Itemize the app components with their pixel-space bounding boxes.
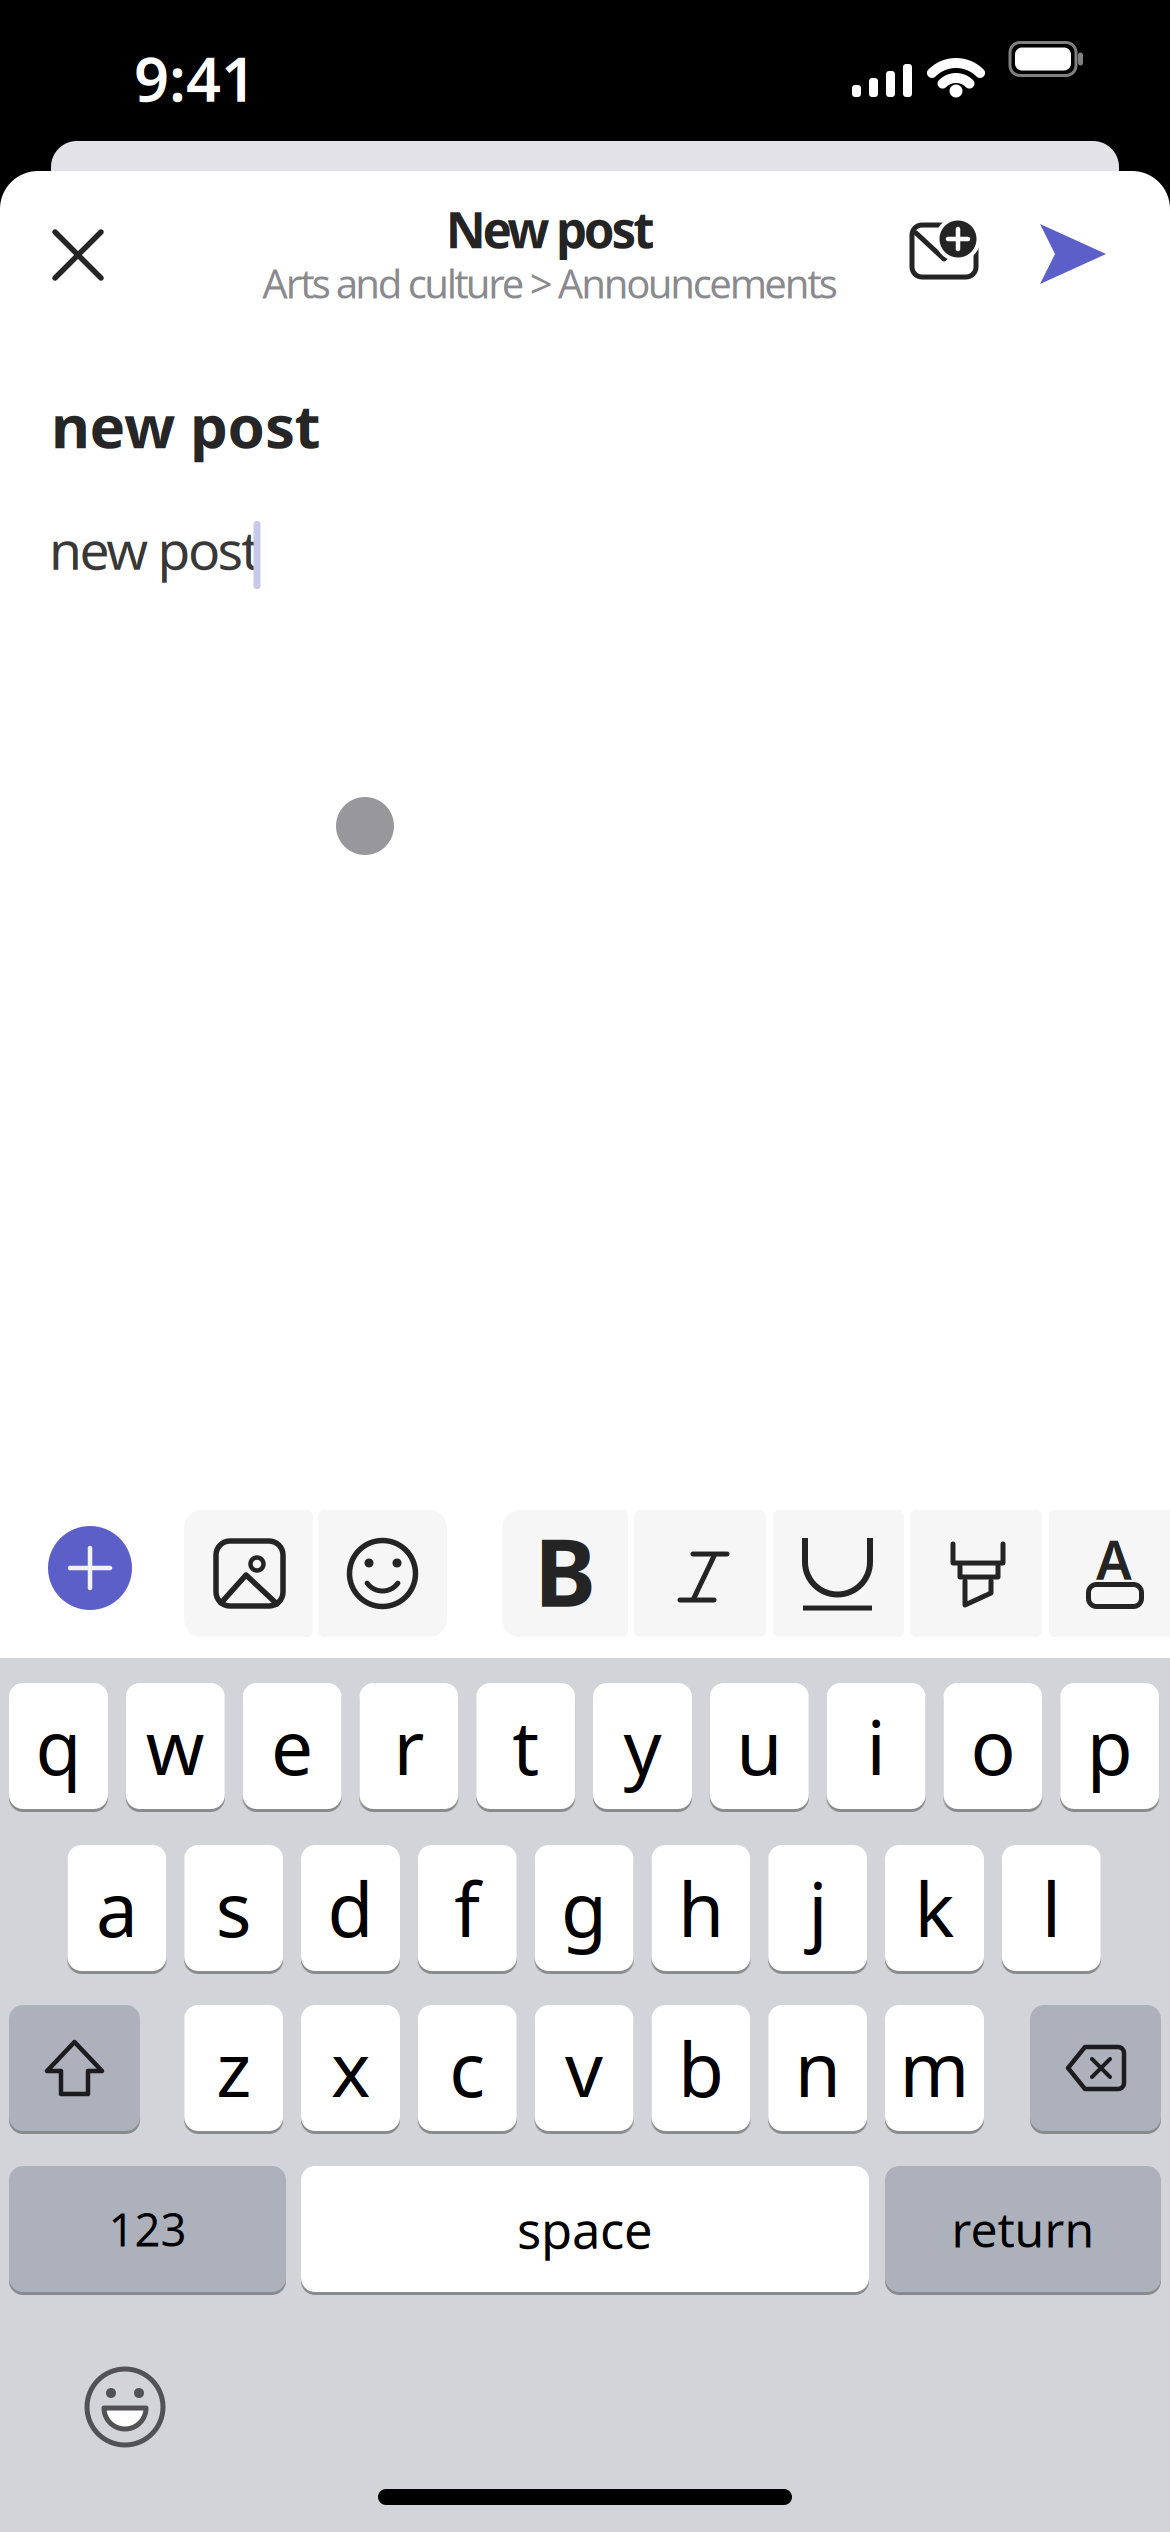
- staticText: new post: [49, 514, 260, 584]
- button[interactable]: Send: [1024, 205, 1120, 301]
- staticText: w: [146, 1696, 205, 1796]
- button[interactable]: i: [827, 1683, 926, 1809]
- button[interactable]: New message: [896, 203, 992, 299]
- button[interactable]: b: [651, 2005, 750, 2131]
- button[interactable]: a: [67, 1845, 166, 1971]
- staticText: q: [35, 1696, 81, 1796]
- button[interactable]: k: [885, 1845, 984, 1971]
- staticText: 9:41: [134, 37, 256, 119]
- button[interactable]: v: [535, 2005, 634, 2131]
- staticText: Arts and culture > Announcements: [262, 256, 838, 309]
- button[interactable]: j: [768, 1845, 867, 1971]
- button[interactable]: c: [418, 2005, 517, 2131]
- staticText: s: [216, 1858, 252, 1958]
- button[interactable]: t: [476, 1683, 575, 1809]
- staticText: a: [96, 1858, 138, 1958]
- button[interactable]: s: [184, 1845, 283, 1971]
- button[interactable]: p: [1060, 1683, 1159, 1809]
- button[interactable]: m: [885, 2005, 984, 2131]
- button[interactable]: Insert emoji: [318, 1510, 447, 1637]
- staticText: l: [1042, 1858, 1061, 1958]
- staticText: y: [623, 1696, 661, 1796]
- button[interactable]: Shift: [9, 2005, 140, 2131]
- button[interactable]: Close: [29, 206, 127, 304]
- staticText: n: [795, 2018, 841, 2118]
- button[interactable]: z: [184, 2005, 283, 2131]
- staticText: j: [808, 1858, 827, 1958]
- staticText: g: [561, 1858, 607, 1958]
- button[interactable]: More options: [48, 1526, 132, 1610]
- staticText: o: [970, 1696, 1015, 1796]
- staticText: d: [327, 1858, 373, 1958]
- button[interactable]: Bold: [502, 1510, 628, 1637]
- staticText: 123: [108, 2199, 186, 2259]
- staticText: p: [1087, 1696, 1133, 1796]
- button[interactable]: n: [768, 2005, 867, 2131]
- button[interactable]: w: [126, 1683, 225, 1809]
- button[interactable]: 123: [9, 2166, 286, 2292]
- staticText: v: [565, 2018, 603, 2118]
- button[interactable]: Highlight: [910, 1510, 1042, 1637]
- button[interactable]: space: [301, 2166, 869, 2292]
- button[interactable]: Italic: [634, 1510, 766, 1637]
- staticText: B: [534, 1508, 596, 1632]
- staticText: i: [867, 1696, 886, 1796]
- button[interactable]: y: [593, 1683, 692, 1809]
- button[interactable]: o: [943, 1683, 1042, 1809]
- staticText: f: [454, 1858, 480, 1958]
- staticText: b: [678, 2018, 724, 2118]
- button[interactable]: x: [301, 2005, 400, 2131]
- button[interactable]: return: [885, 2166, 1161, 2292]
- button[interactable]: g: [535, 1845, 634, 1971]
- staticText: r: [393, 1696, 424, 1796]
- button[interactable]: Insert photo: [184, 1510, 313, 1637]
- staticText: h: [678, 1858, 724, 1958]
- button[interactable]: Emoji: [81, 2363, 169, 2451]
- staticText: u: [736, 1696, 782, 1796]
- staticText: e: [271, 1696, 313, 1796]
- staticText: t: [512, 1696, 539, 1796]
- staticText: return: [951, 2197, 1094, 2261]
- button[interactable]: h: [651, 1845, 750, 1971]
- button[interactable]: f: [418, 1845, 517, 1971]
- staticText: A: [1096, 1524, 1132, 1594]
- staticText: x: [331, 2018, 370, 2118]
- staticText: z: [216, 2018, 251, 2118]
- button[interactable]: l: [1002, 1845, 1101, 1971]
- button[interactable]: Delete: [1030, 2005, 1161, 2131]
- staticText: space: [517, 2195, 653, 2263]
- button[interactable]: r: [359, 1683, 458, 1809]
- button[interactable]: Font colour: [1049, 1510, 1170, 1637]
- staticText: New post: [446, 196, 654, 262]
- staticText: new post: [51, 385, 320, 465]
- button[interactable]: q: [9, 1683, 108, 1809]
- button[interactable]: e: [243, 1683, 342, 1809]
- button[interactable]: d: [301, 1845, 400, 1971]
- staticText: k: [914, 1858, 954, 1958]
- button[interactable]: Underline: [773, 1510, 904, 1637]
- staticText: c: [449, 2018, 485, 2118]
- staticText: m: [899, 2018, 969, 2118]
- button[interactable]: u: [710, 1683, 809, 1809]
